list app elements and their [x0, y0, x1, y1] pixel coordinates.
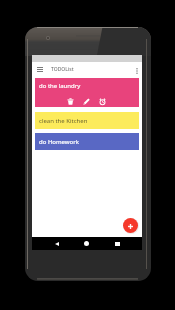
- staticText: clean the Kitchen: [39, 117, 88, 125]
- button[interactable]: Add task: [123, 218, 138, 233]
- button[interactable]: Edit: [82, 97, 91, 106]
- button[interactable]: do the laundry: [35, 78, 139, 107]
- button[interactable]: clean the Kitchen: [35, 112, 139, 129]
- button[interactable]: More options: [132, 63, 142, 78]
- button[interactable]: Recents: [111, 237, 124, 250]
- staticText: do Homework: [39, 138, 79, 146]
- button[interactable]: Menu: [33, 62, 46, 77]
- button[interactable]: Set reminder: [98, 97, 107, 106]
- button[interactable]: Back: [50, 237, 63, 250]
- staticText: TODOList: [51, 66, 74, 73]
- button[interactable]: Home: [80, 237, 93, 250]
- button[interactable]: do Homework: [35, 133, 139, 150]
- button[interactable]: Delete: [66, 97, 75, 106]
- staticText: do the laundry: [39, 82, 81, 90]
